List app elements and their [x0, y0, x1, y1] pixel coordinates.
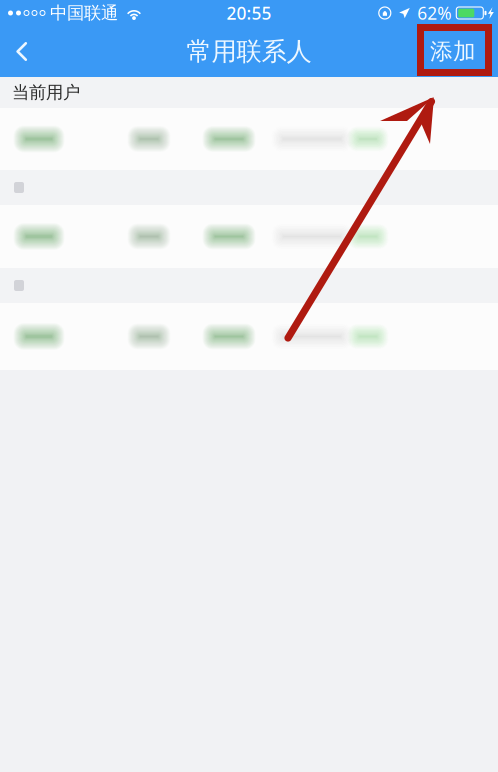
button[interactable]: Back: [0, 26, 47, 77]
staticText: 中国联通: [50, 2, 118, 24]
staticText: 添加: [430, 38, 476, 65]
button[interactable]: 添加: [416, 26, 498, 77]
staticText: 62%: [417, 1, 451, 24]
staticText: 20:55: [226, 1, 271, 24]
button[interactable]: [0, 205, 498, 268]
button[interactable]: [0, 303, 498, 370]
staticText: 常用联系人: [186, 36, 311, 67]
button[interactable]: [0, 108, 498, 170]
staticText: 当前用户: [12, 82, 80, 103]
